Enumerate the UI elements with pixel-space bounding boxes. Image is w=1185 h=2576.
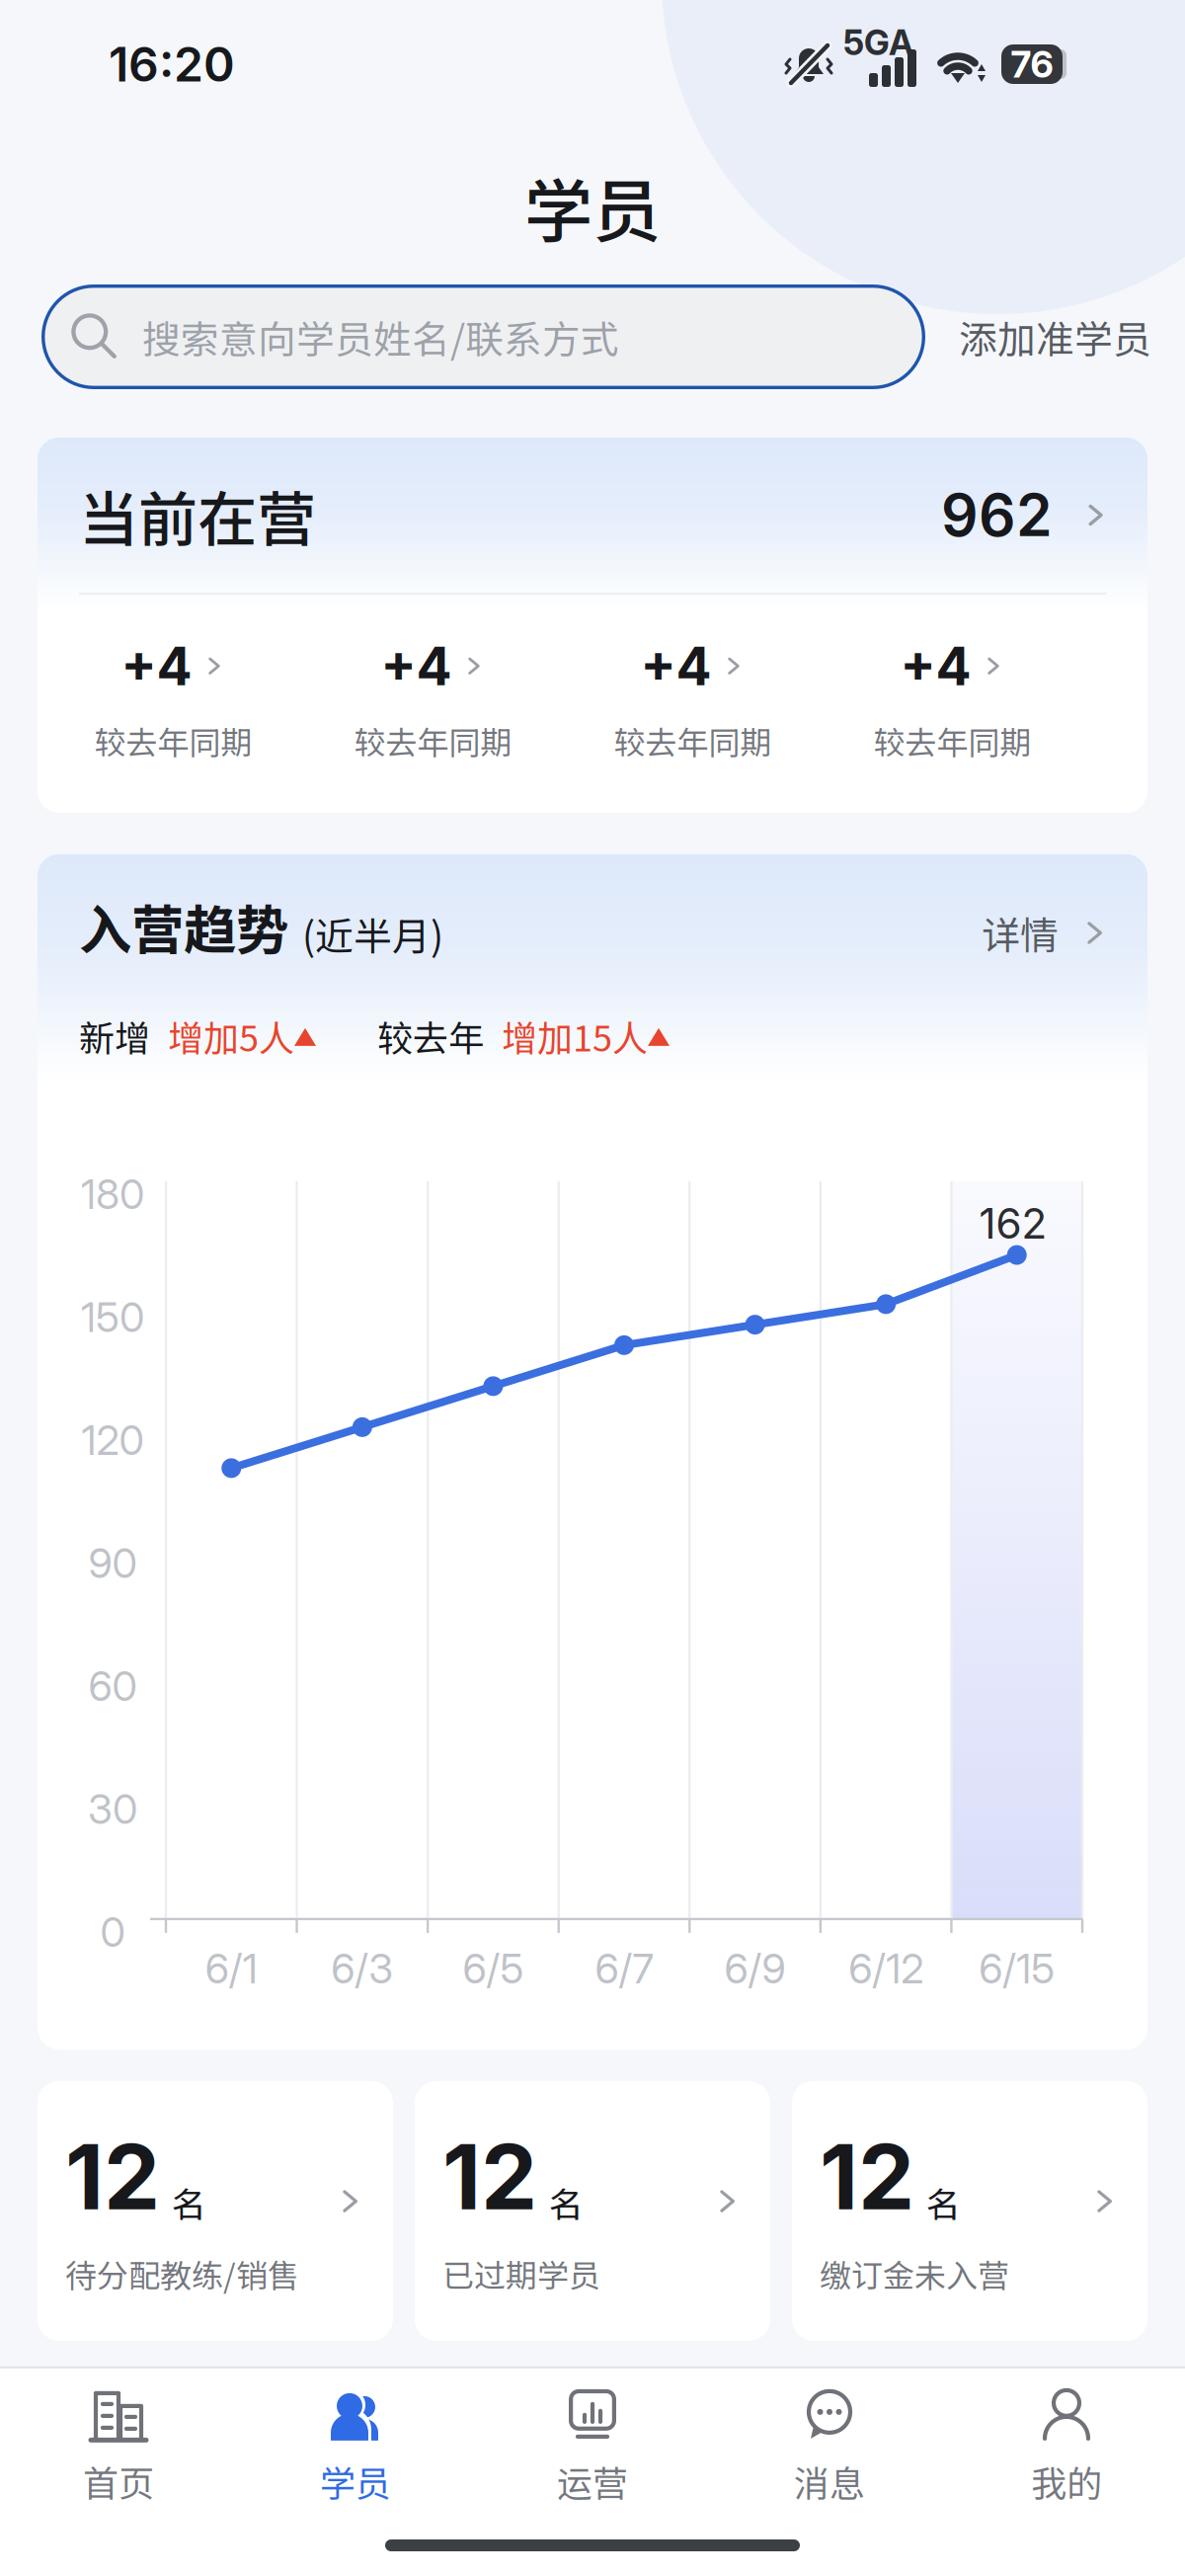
staticText: 6/15 [979, 1944, 1055, 1993]
staticText: 添加准学员 [959, 309, 1151, 364]
staticText: 12 [820, 2123, 914, 2231]
staticText: 增加5人 [168, 1010, 294, 1062]
staticText: 6/1 [205, 1944, 258, 1993]
staticText: 90 [88, 1538, 137, 1588]
staticText: +4 [121, 634, 192, 698]
staticText: 6/3 [331, 1944, 393, 1993]
staticText: 6/5 [463, 1944, 524, 1993]
staticText: 学员 [524, 157, 661, 256]
staticText: 30 [88, 1784, 137, 1834]
button[interactable]: +4 [563, 634, 823, 763]
button[interactable]: 当前在营 [38, 438, 1147, 593]
staticText: 6/7 [595, 1944, 653, 1993]
staticText: 0 [100, 1907, 125, 1957]
staticText: 名 [172, 2177, 206, 2227]
staticText: 入营趋势 [79, 888, 288, 965]
button[interactable]: +4 [43, 634, 303, 763]
staticText: (近半月) [302, 906, 443, 962]
button[interactable]: 首页 [0, 2384, 237, 2507]
staticText: 较去年同期 [354, 718, 512, 763]
staticText: 增加15人 [502, 1010, 648, 1062]
staticText: 我的 [1031, 2455, 1102, 2507]
staticText: 180 [81, 1169, 144, 1219]
button[interactable]: 我的 [948, 2384, 1185, 2507]
staticText: 详情 [982, 905, 1059, 961]
staticText: 较去年 [377, 1010, 484, 1062]
staticText: 76 [1011, 42, 1053, 87]
staticText: 新增 [79, 1010, 150, 1062]
staticText: 名 [549, 2177, 584, 2227]
staticText: 5GA [843, 22, 913, 63]
staticText: 待分配教练/销售 [65, 2251, 299, 2296]
staticText: 搜索意向学员姓名/联系方式 [142, 309, 619, 364]
staticText: 较去年同期 [614, 718, 772, 763]
button[interactable]: 消息 [711, 2384, 948, 2507]
button[interactable]: 添加准学员 [959, 309, 1151, 364]
staticText: 16:20 [109, 36, 235, 93]
staticText: 60 [88, 1661, 137, 1711]
staticText: 150 [81, 1292, 144, 1342]
staticText: +4 [640, 634, 711, 698]
staticText: 运营 [557, 2455, 628, 2507]
staticText: +4 [900, 634, 971, 698]
button[interactable]: 12 [38, 2081, 393, 2341]
staticText: 12 [442, 2123, 537, 2231]
staticText: 名 [926, 2177, 961, 2227]
staticText: 已过期学员 [442, 2251, 600, 2296]
button[interactable]: +4 [303, 634, 563, 763]
button[interactable]: 12 [792, 2081, 1147, 2341]
staticText: 当前在营 [79, 472, 316, 558]
staticText: 120 [81, 1415, 144, 1465]
button[interactable]: 搜索意向学员姓名/联系方式 [41, 284, 925, 389]
staticText: +4 [381, 634, 452, 698]
button[interactable]: 运营 [474, 2384, 711, 2507]
staticText: 首页 [83, 2455, 154, 2507]
staticText: 较去年同期 [873, 718, 1031, 763]
staticText: 缴订金未入营 [820, 2251, 1009, 2296]
staticText: 6/9 [724, 1944, 786, 1993]
staticText: 12 [65, 2123, 160, 2231]
staticText: 962 [941, 480, 1053, 550]
staticText: 较去年同期 [94, 718, 252, 763]
staticText: 6/12 [848, 1944, 923, 1993]
staticText: 162 [979, 1198, 1047, 1249]
button[interactable]: 学员 [237, 2384, 474, 2507]
staticText: 消息 [794, 2455, 865, 2507]
button[interactable]: +4 [823, 634, 1082, 763]
staticText: 学员 [320, 2455, 391, 2507]
button[interactable]: 详情 [982, 905, 1110, 965]
button[interactable]: 12 [415, 2081, 770, 2341]
